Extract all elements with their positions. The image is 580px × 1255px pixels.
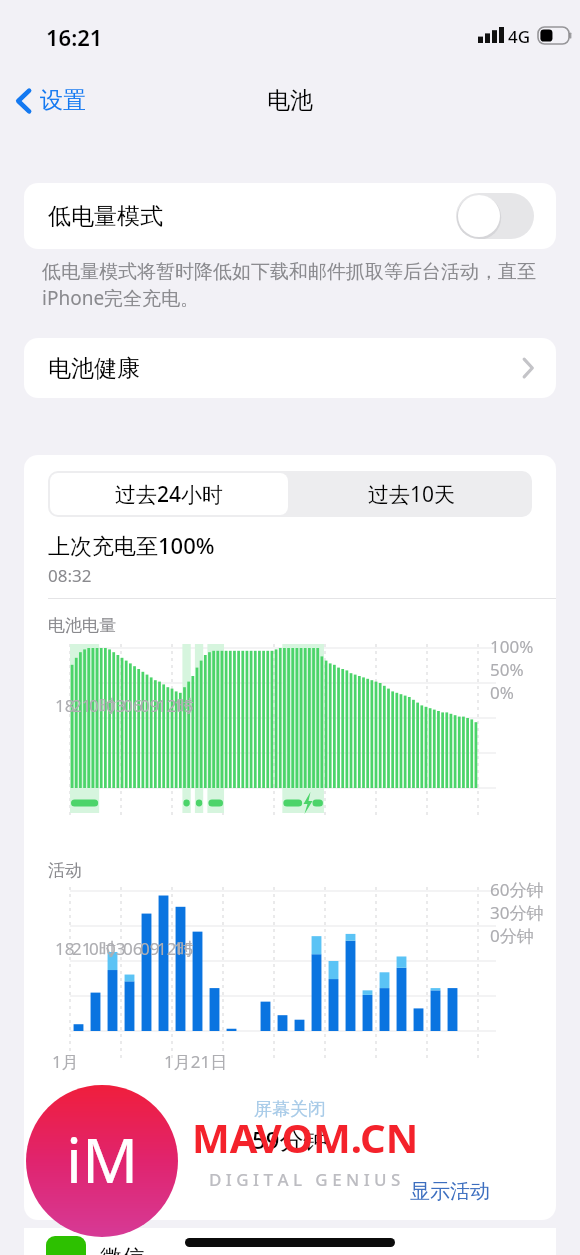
staticText: 15 [174,694,194,717]
staticText: 100% [490,635,534,658]
button[interactable]: 设置 [8,82,94,119]
staticText: 21 [72,937,92,960]
staticText: 15 [174,937,194,960]
staticText: 上次充电至100% [48,530,215,560]
staticText: 18 [55,937,75,960]
staticText: 电池电量 [48,615,116,636]
staticText: 电池健康 [48,354,140,383]
staticText: 0时 [89,937,116,960]
staticText: 06 [123,694,143,717]
staticText: 1月21日 [164,1050,228,1073]
staticText: 09 [140,937,160,960]
button[interactable]: 过去24小时 [50,473,288,515]
button[interactable]: 电池健康 [24,338,556,398]
staticText: 50% [490,658,524,681]
button[interactable]: 显示活动 [400,1173,500,1210]
staticText: 0时 [89,694,116,717]
staticText: 21 [72,694,92,717]
staticText: 活动 [48,860,82,881]
staticText: 过去24小时 [115,480,224,509]
staticText: 03 [106,694,126,717]
staticText: 1月 [52,1050,79,1073]
staticText: 电池 [0,86,580,115]
staticText: 59分钟 [252,1123,328,1156]
staticText: 09 [140,694,160,717]
staticText: 08:32 [48,564,92,587]
staticText: 03 [106,937,126,960]
staticText: 4G [508,25,531,48]
button[interactable]: 过去10天 [292,471,532,517]
staticText: 0% [490,681,514,704]
staticText: 微信 [100,1244,144,1255]
staticText: 30分钟 [490,901,544,924]
button[interactable]: 微信 [24,1228,556,1255]
staticText: 屏幕关闭 [254,1098,326,1121]
staticText: 显示活动 [410,1179,490,1204]
staticText: 低电量模式将暂时降低如下载和邮件抓取等后台活动，直至 iPhone完全充电。 [42,260,536,311]
staticText: MAVOM.CN [192,1110,419,1164]
staticText: 低电量模式 [48,202,163,231]
staticText: 过去10天 [368,480,456,509]
staticText: D I G I T A L G E N I U S [209,1168,401,1191]
other: 电池健康 [522,357,534,379]
staticText: 60分钟 [490,878,544,901]
button[interactable]: 低电量模式 [24,183,556,249]
staticText: 18 [55,694,75,717]
staticText: 12时 [157,694,194,717]
staticText: 06 [123,937,143,960]
staticText: 16:21 [46,22,103,52]
staticText: 12时 [157,937,194,960]
staticText: 0分钟 [490,924,534,947]
staticText: 设置 [40,86,86,115]
staticText: iM [66,1117,139,1201]
